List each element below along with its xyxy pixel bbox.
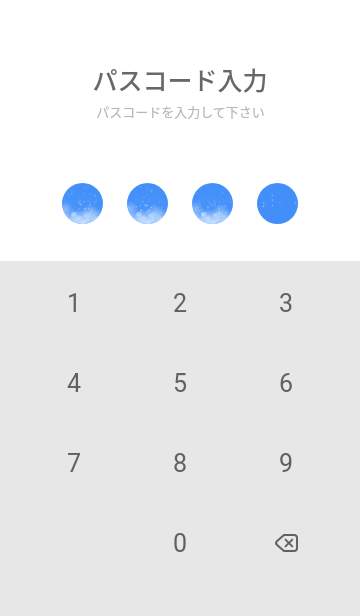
- staticText: 5: [173, 369, 188, 398]
- staticText: 6: [279, 369, 294, 398]
- button[interactable]: 7: [21, 423, 127, 503]
- staticText: 8: [173, 449, 188, 478]
- staticText: 0: [173, 529, 188, 558]
- button[interactable]: 8: [127, 423, 233, 503]
- staticText: 3: [279, 289, 294, 318]
- staticText: 9: [279, 449, 294, 478]
- button[interactable]: 6: [233, 343, 339, 423]
- staticText: 4: [67, 369, 82, 398]
- button[interactable]: Delete: [233, 503, 339, 583]
- staticText: パスコード入力: [92, 61, 268, 97]
- button[interactable]: 5: [127, 343, 233, 423]
- button[interactable]: 9: [233, 423, 339, 503]
- button[interactable]: 2: [127, 263, 233, 343]
- button[interactable]: 3: [233, 263, 339, 343]
- button[interactable]: 4: [21, 343, 127, 423]
- staticText: 1: [67, 289, 82, 318]
- staticText: 7: [67, 449, 82, 478]
- staticText: パスコードを入力して下さい: [96, 102, 265, 121]
- button[interactable]: 1: [21, 263, 127, 343]
- staticText: 2: [173, 289, 188, 318]
- button[interactable]: 0: [127, 503, 233, 583]
